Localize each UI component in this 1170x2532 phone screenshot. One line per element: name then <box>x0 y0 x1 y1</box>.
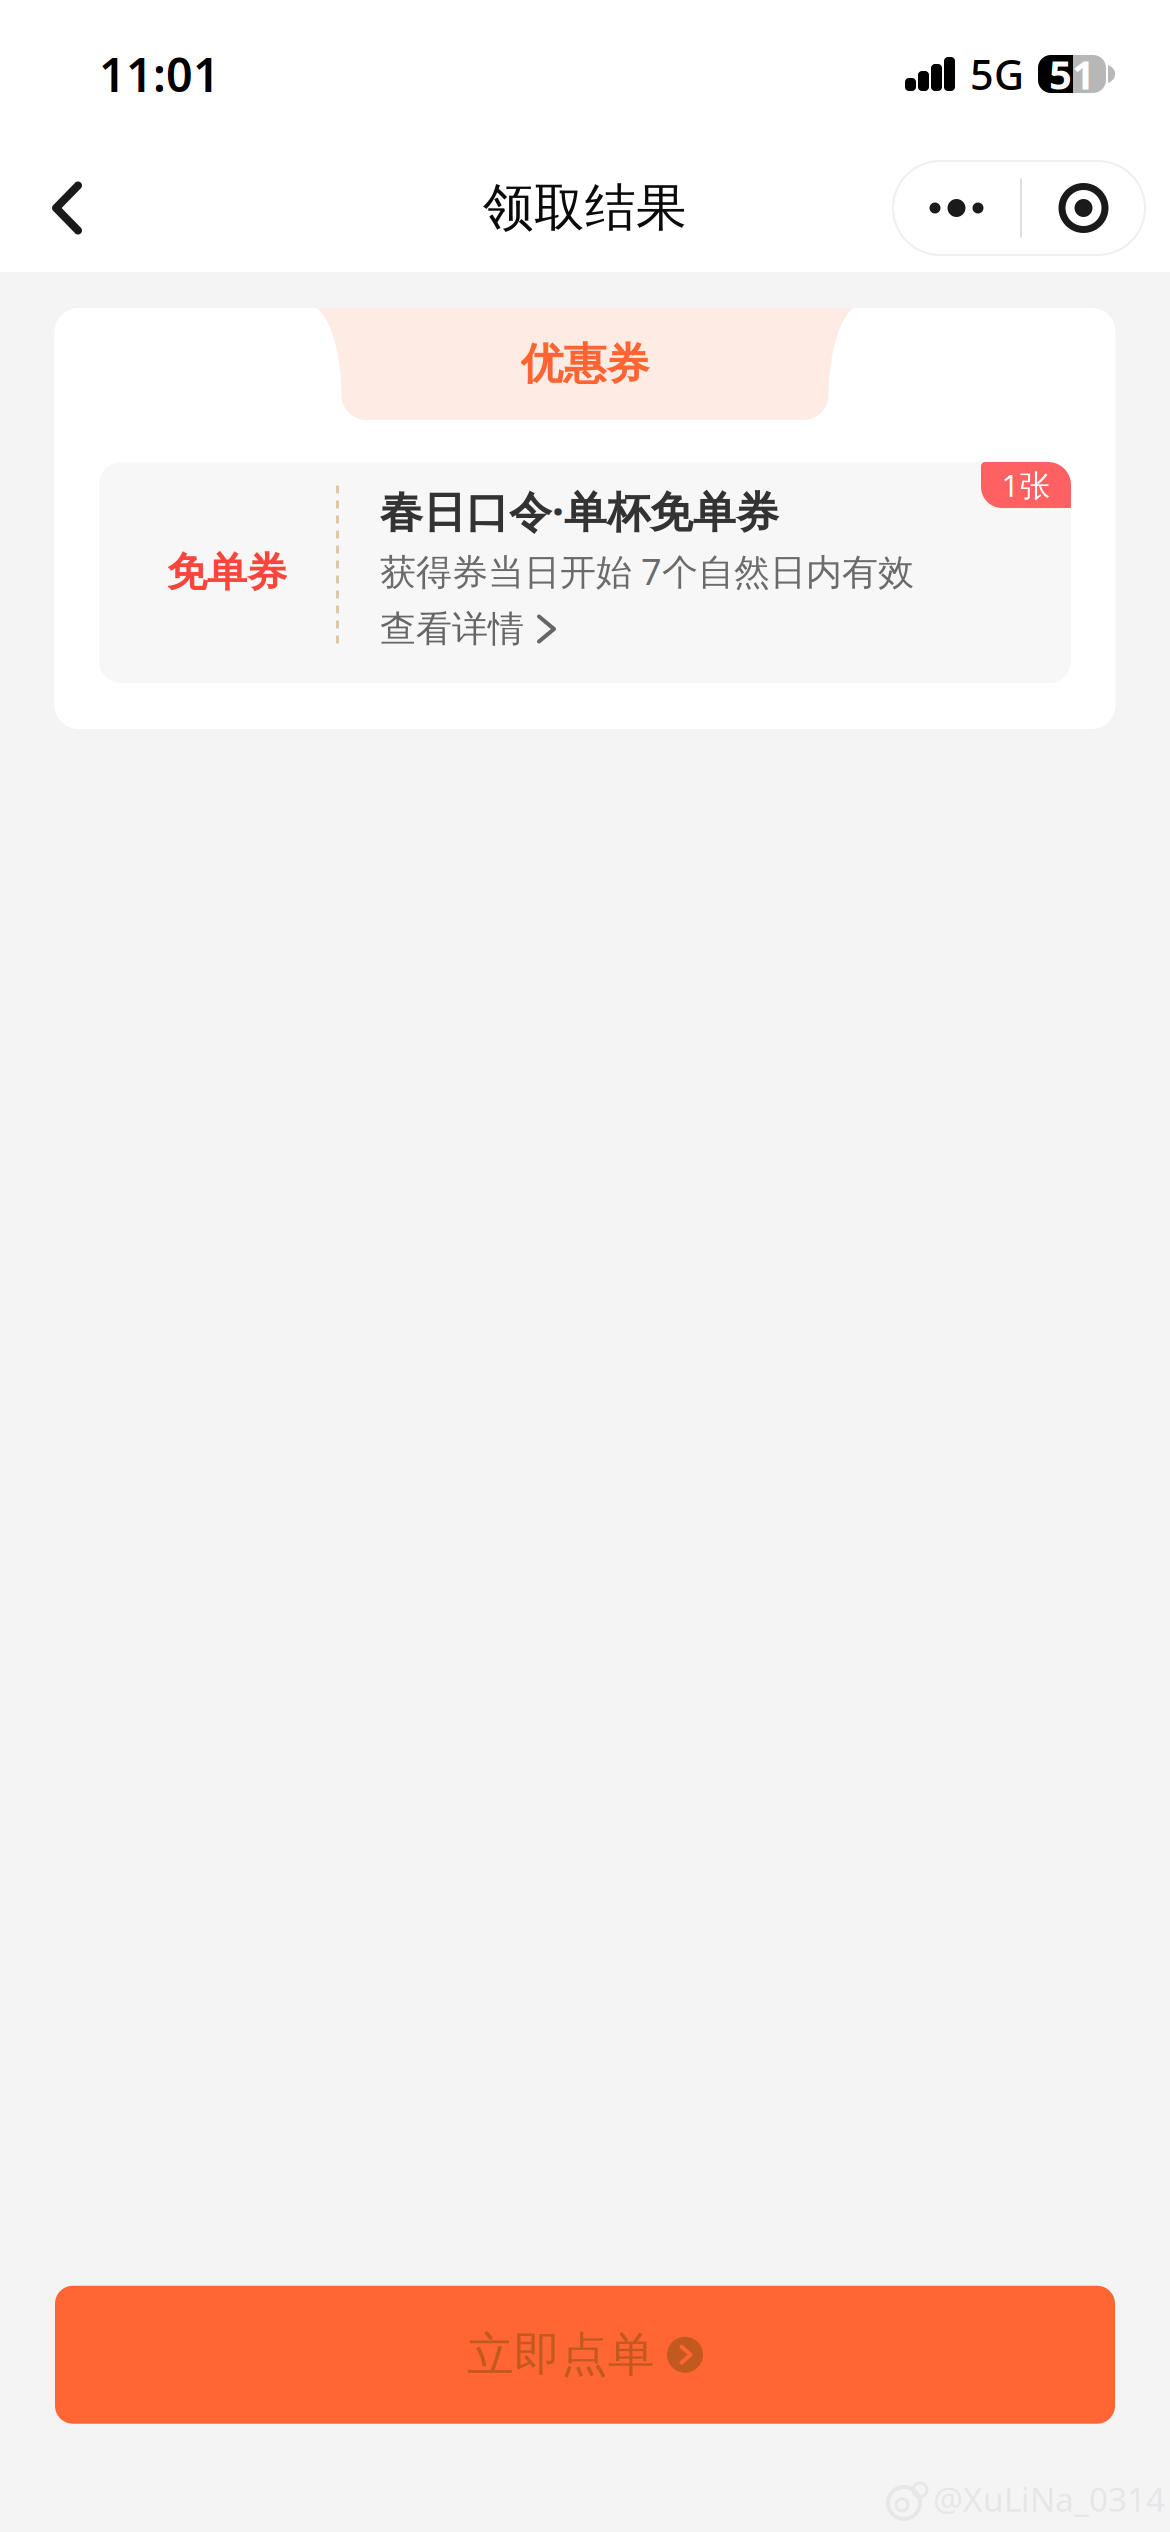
staticText: 获得券当日开始 7个自然日内有效 <box>380 547 914 595</box>
staticText: 1张 <box>1001 465 1050 505</box>
button[interactable]: Back <box>0 155 118 260</box>
staticText: @XuLiNa_0314 <box>933 2477 1165 2521</box>
staticText: 领取结果 <box>483 177 687 239</box>
button[interactable]: 立即点单 <box>55 2286 1115 2424</box>
staticText: 春日口令·单杯免单券 <box>380 483 779 539</box>
staticText: 优惠券 <box>520 338 649 390</box>
button[interactable]: 查看详情 <box>380 600 554 658</box>
button[interactable]: More <box>893 161 1020 255</box>
staticText: 11:01 <box>99 43 220 105</box>
staticText: 免单券 <box>167 548 287 597</box>
staticText: 查看详情 <box>380 607 524 651</box>
staticText: 5G <box>970 47 1024 101</box>
staticText: 51 <box>1049 47 1095 100</box>
staticText: 立即点单 <box>467 2326 655 2383</box>
button[interactable]: Close mini program <box>1022 161 1145 255</box>
